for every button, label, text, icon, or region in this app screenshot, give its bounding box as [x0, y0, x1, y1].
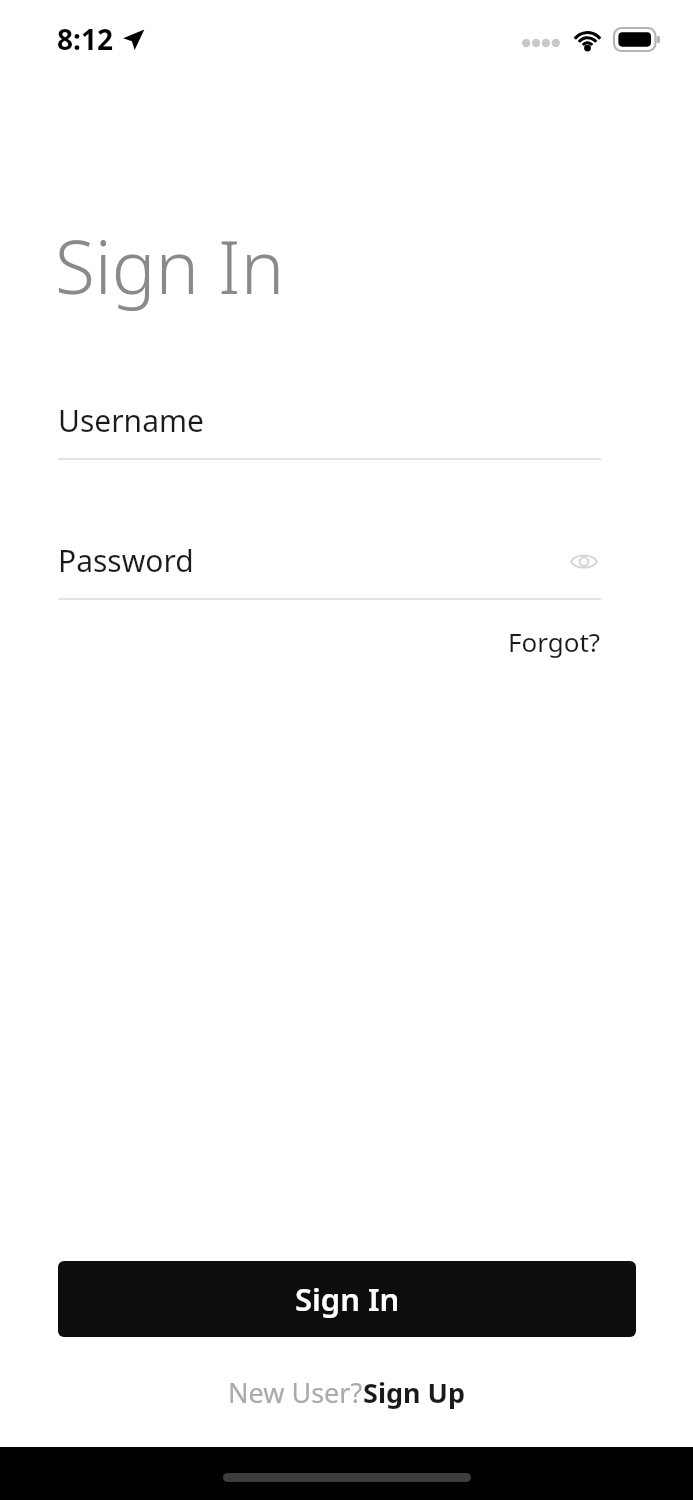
button[interactable]: Sign In — [58, 1261, 636, 1337]
staticText: Sign In — [295, 1278, 400, 1320]
button[interactable]: Forgot? — [504, 618, 605, 665]
staticText: Password — [58, 540, 194, 581]
staticText: Forgot? — [508, 624, 601, 659]
staticText: Sign In — [55, 216, 285, 315]
staticText: New User? — [228, 1374, 363, 1411]
button[interactable]: Show password — [567, 544, 601, 578]
staticText: 8:12 — [57, 20, 113, 58]
button[interactable]: Sign Up — [363, 1374, 466, 1411]
button[interactable]: Username — [58, 400, 601, 460]
staticText: Sign Up — [363, 1374, 466, 1411]
staticText: Username — [58, 400, 204, 441]
button[interactable]: Password — [58, 540, 601, 581]
